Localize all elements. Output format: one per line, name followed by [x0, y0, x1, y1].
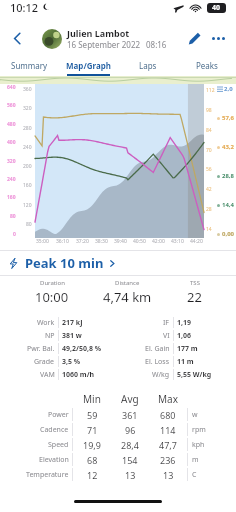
- staticText: 44:20: [190, 238, 203, 245]
- staticText: 28,8: [222, 172, 235, 180]
- staticText: 16 September 2022: [67, 39, 141, 50]
- staticText: Max: [158, 392, 178, 406]
- staticText: 120: [23, 202, 32, 209]
- staticText: Min: [83, 392, 101, 406]
- staticText: 5,55 W/kg: [177, 370, 212, 380]
- staticText: 680: [160, 409, 176, 421]
- button[interactable]: Map/Graph: [59, 54, 118, 76]
- staticText: 70: [206, 147, 212, 154]
- staticText: 200: [23, 163, 32, 170]
- staticText: 14: [206, 226, 212, 233]
- staticText: 98: [206, 107, 212, 114]
- staticText: 36:10: [56, 238, 69, 245]
- staticText: 19,9: [83, 439, 101, 451]
- staticText: El. Loss: [145, 357, 170, 367]
- staticText: 13: [125, 469, 136, 481]
- staticText: 154: [122, 454, 138, 466]
- staticText: rpm: [192, 425, 206, 435]
- staticText: NP: [45, 331, 55, 341]
- staticText: El. Gain: [145, 344, 170, 354]
- staticText: Elevation: [39, 455, 69, 465]
- staticText: 47,7: [159, 439, 177, 451]
- staticText: 38:30: [95, 238, 108, 245]
- staticText: 42:00: [152, 238, 165, 245]
- staticText: 361: [122, 409, 138, 421]
- staticText: 28,4: [121, 439, 139, 451]
- staticText: Distance: [115, 279, 140, 287]
- staticText: Map/Graph: [66, 60, 111, 71]
- staticText: 381 w: [62, 331, 82, 341]
- button[interactable]: Edit: [182, 26, 206, 50]
- staticText: 56: [206, 166, 212, 173]
- staticText: 480: [7, 121, 16, 128]
- staticText: w: [192, 410, 198, 420]
- staticText: 560: [7, 102, 16, 109]
- staticText: 280: [23, 125, 32, 132]
- button[interactable]: Peak 10 min: [8, 251, 236, 275]
- staticText: 12: [87, 469, 98, 481]
- staticText: 28: [206, 206, 212, 213]
- staticText: W/kg: [152, 370, 170, 380]
- staticText: m: [192, 455, 199, 465]
- staticText: 112: [206, 87, 215, 94]
- staticText: 13: [163, 469, 174, 481]
- staticText: 640: [7, 84, 16, 91]
- button[interactable]: Summary: [0, 54, 59, 76]
- staticText: Work: [37, 318, 55, 328]
- staticText: 43:10: [171, 238, 184, 245]
- staticText: 1060 m/h: [62, 370, 95, 380]
- staticText: 39:40: [114, 238, 127, 245]
- staticText: 35:00: [36, 238, 49, 245]
- staticText: 4,74 km: [103, 288, 152, 306]
- staticText: 59: [87, 409, 98, 421]
- staticText: 71: [87, 424, 98, 436]
- staticText: Pwr. Bal.: [27, 344, 55, 354]
- button[interactable]: Julien Lambot: [42, 27, 167, 50]
- staticText: 114: [160, 424, 176, 436]
- button[interactable]: More options: [206, 26, 230, 50]
- button[interactable]: Laps: [118, 54, 177, 76]
- staticText: Summary: [11, 60, 48, 71]
- staticText: 14,4: [222, 201, 235, 209]
- staticText: 96: [125, 424, 136, 436]
- staticText: 68: [87, 454, 98, 466]
- staticText: 40:50: [133, 238, 146, 245]
- staticText: Peaks: [196, 60, 218, 71]
- staticText: 1,06: [177, 331, 192, 341]
- staticText: 22: [187, 288, 202, 306]
- staticText: VI: [163, 331, 170, 341]
- staticText: 37:20: [76, 238, 89, 245]
- staticText: 80: [26, 221, 32, 228]
- staticText: 08:16: [146, 39, 167, 50]
- staticText: 217 kJ: [62, 318, 83, 328]
- staticText: 160: [23, 182, 32, 189]
- staticText: 11 m: [177, 357, 194, 367]
- staticText: Speed: [48, 440, 69, 450]
- staticText: 236: [160, 454, 176, 466]
- staticText: Laps: [139, 60, 157, 71]
- staticText: Temperature: [26, 470, 69, 480]
- staticText: Duration: [40, 279, 65, 287]
- staticText: 80: [10, 213, 16, 220]
- staticText: C: [192, 470, 197, 480]
- staticText: 320: [7, 158, 16, 165]
- staticText: 49,2/50,8 %: [62, 344, 102, 354]
- staticText: TSS: [190, 279, 200, 287]
- staticText: Grade: [34, 357, 55, 367]
- staticText: VAM: [40, 370, 55, 380]
- staticText: 240: [7, 176, 16, 183]
- staticText: 42: [206, 186, 212, 193]
- staticText: kph: [192, 440, 205, 450]
- staticText: Power: [48, 410, 69, 420]
- staticText: 360: [23, 86, 32, 93]
- staticText: 10:12: [10, 0, 39, 15]
- staticText: 177 m: [177, 344, 198, 354]
- staticText: 10:00: [35, 288, 69, 306]
- staticText: 0: [13, 231, 16, 238]
- staticText: 40: [212, 3, 221, 13]
- staticText: Avg: [121, 392, 139, 406]
- staticText: 160: [7, 194, 16, 201]
- staticText: 57,6: [222, 114, 235, 122]
- button[interactable]: Peaks: [177, 54, 236, 76]
- button[interactable]: Back: [6, 27, 28, 49]
